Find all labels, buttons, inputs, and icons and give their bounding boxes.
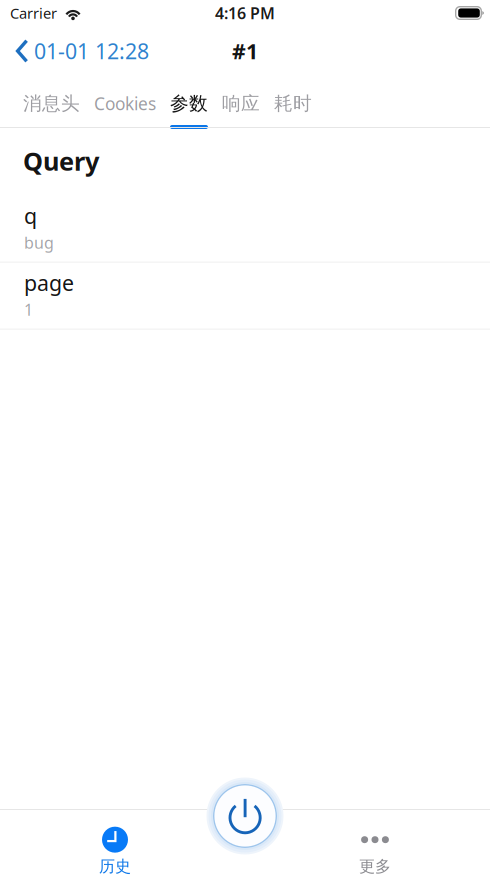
button[interactable]: 更多 <box>335 810 415 876</box>
staticText: 消息头 <box>23 92 80 115</box>
staticText: #1 <box>232 37 258 65</box>
button[interactable]: 历史 <box>75 810 155 876</box>
button[interactable]: 消息头 <box>23 76 80 127</box>
button[interactable]: 01-01 12:28 <box>0 26 159 76</box>
staticText: page <box>24 269 74 297</box>
staticText: 历史 <box>99 857 131 876</box>
staticText: bug <box>24 232 54 253</box>
staticText: 01-01 12:28 <box>34 37 149 65</box>
staticText: 更多 <box>359 857 391 876</box>
button[interactable]: 响应 <box>222 76 260 127</box>
button[interactable]: 参数 <box>170 76 208 127</box>
button[interactable]: Cookies <box>94 76 156 127</box>
button[interactable]: 耗时 <box>274 76 312 127</box>
staticText: q <box>24 202 37 230</box>
staticText: Cookies <box>94 92 156 115</box>
staticText: 4:16 PM <box>215 2 275 24</box>
button[interactable]: Power <box>205 776 285 856</box>
staticText: Query <box>23 144 99 178</box>
staticText: 1 <box>24 299 33 320</box>
staticText: Carrier <box>10 3 57 23</box>
staticText: 参数 <box>170 92 208 115</box>
staticText: 耗时 <box>274 92 312 115</box>
staticText: 响应 <box>222 92 260 115</box>
